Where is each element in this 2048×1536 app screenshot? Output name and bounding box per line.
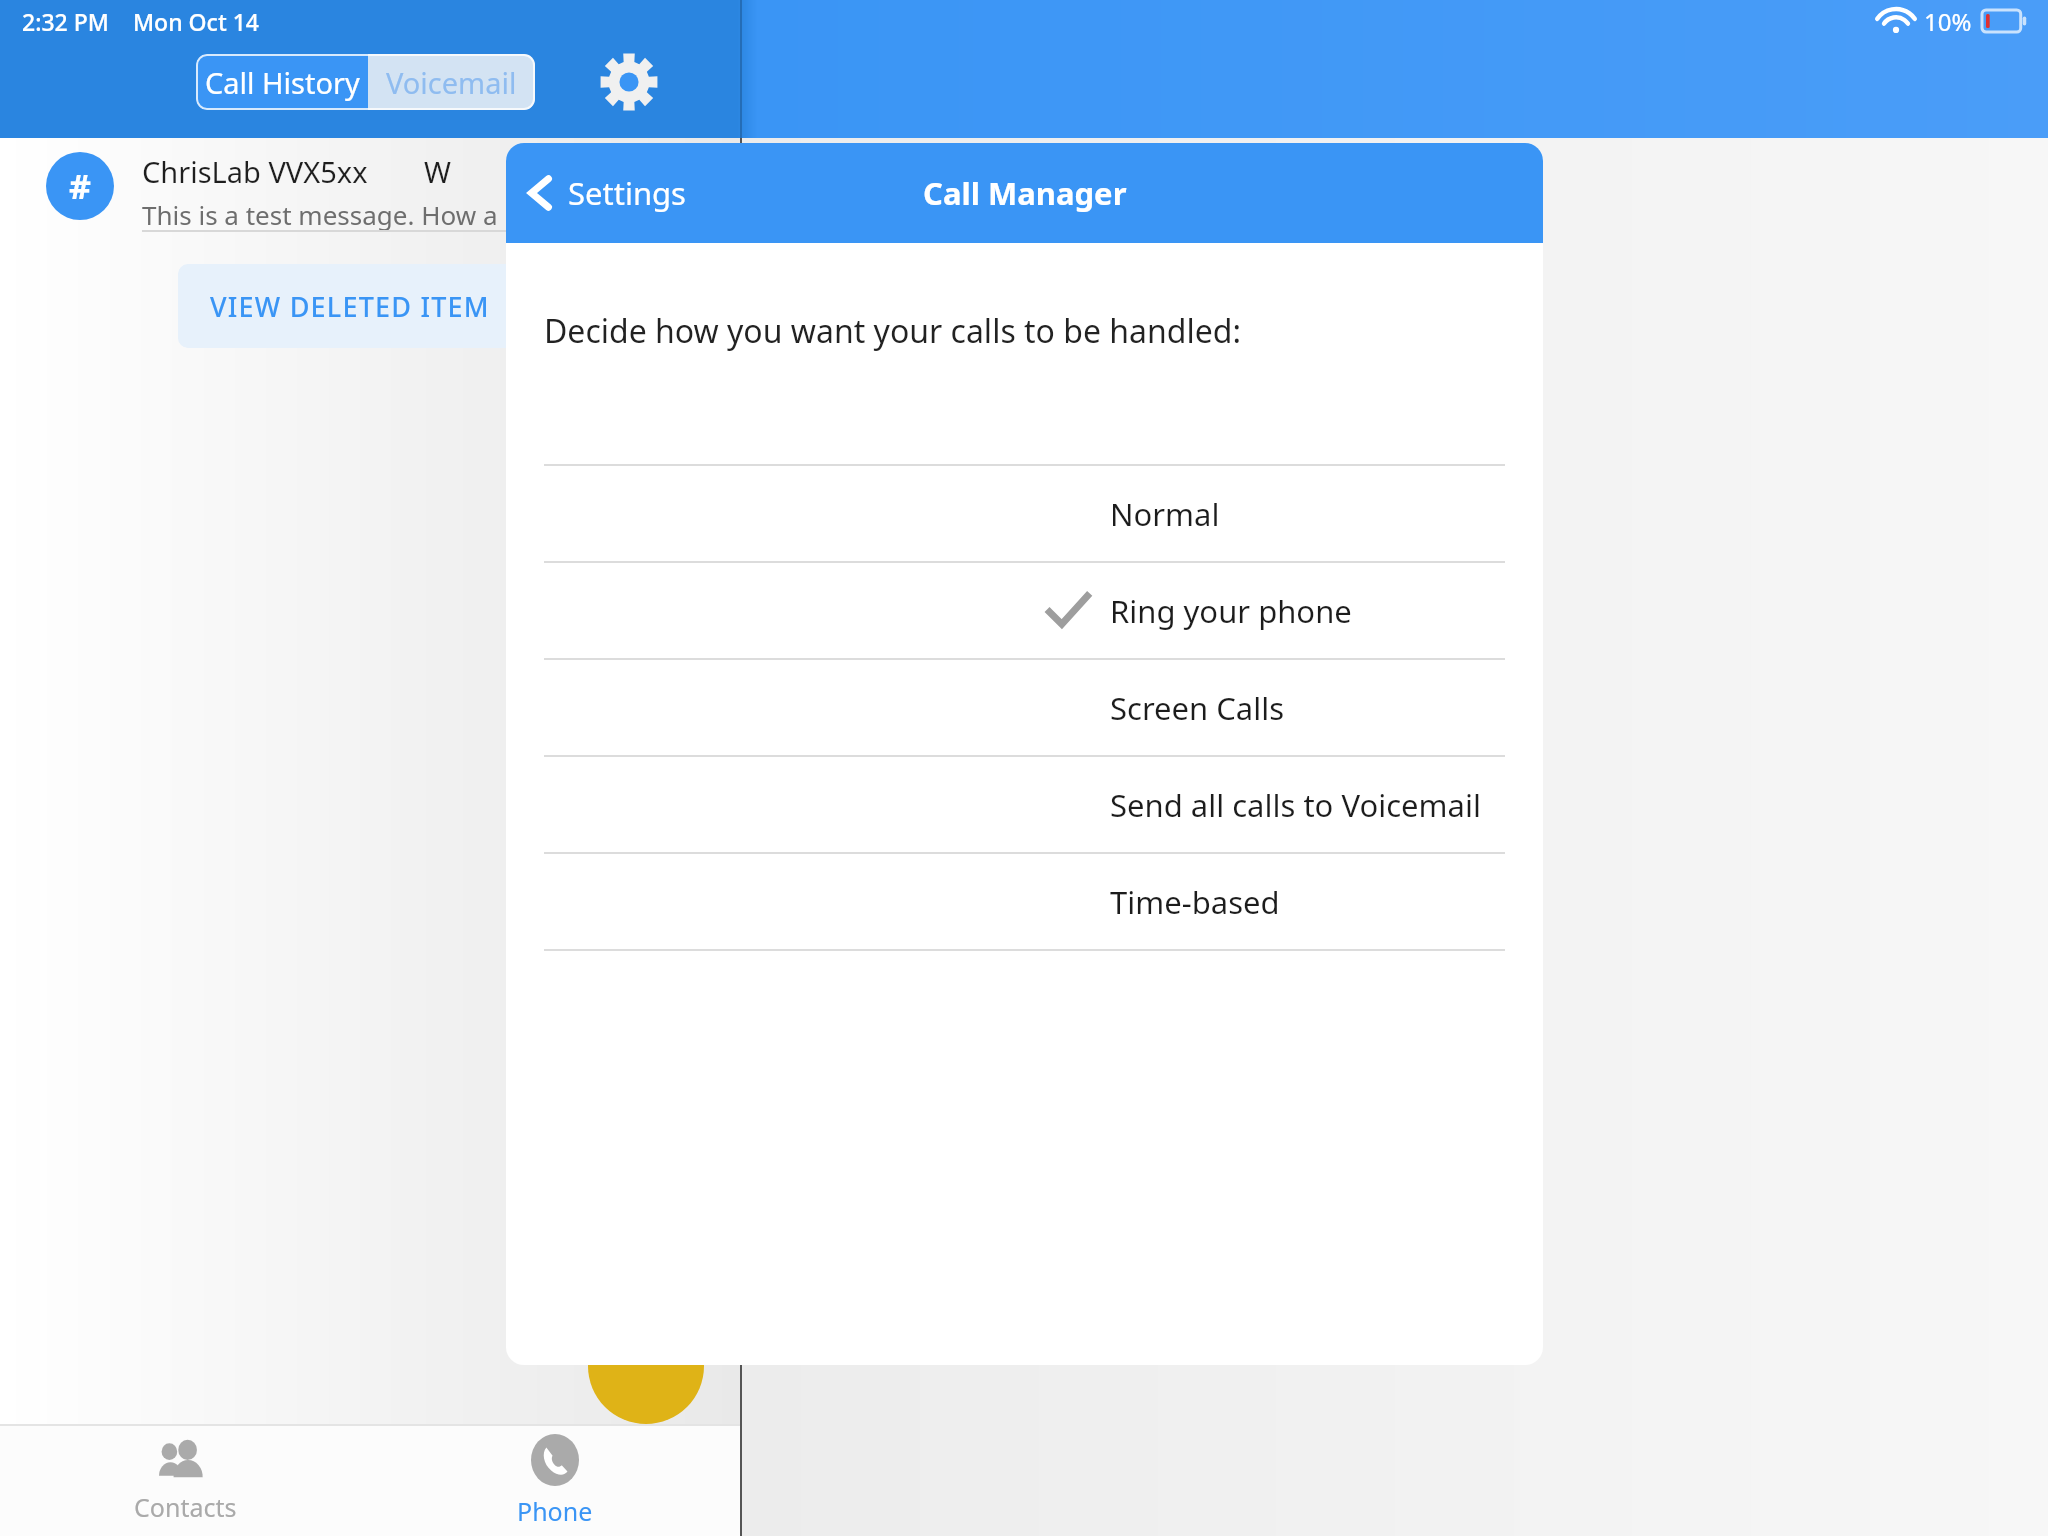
staticText: This is a test message. How a	[142, 197, 498, 230]
button[interactable]: VIEW DELETED ITEM	[178, 264, 738, 348]
staticText: #	[69, 163, 91, 209]
staticText: Call History	[205, 63, 360, 102]
staticText: Contacts	[134, 1490, 237, 1524]
button[interactable]: Ring your phone	[506, 563, 1543, 658]
staticText: Mon Oct 14	[133, 6, 259, 37]
staticText: W	[424, 152, 451, 191]
staticText: Screen Calls	[1110, 687, 1285, 729]
button[interactable]: Screen Calls	[506, 660, 1543, 755]
button[interactable]: Voicemail	[368, 54, 535, 110]
button[interactable]: Normal	[506, 466, 1543, 561]
staticText: Decide how you want your calls to be han…	[544, 309, 1242, 353]
staticText: Voicemail	[386, 63, 517, 102]
staticText: Ring your phone	[1110, 590, 1352, 632]
staticText: 2:32 PM	[22, 6, 109, 37]
staticText: ChrisLab VVX5xx	[142, 152, 368, 191]
button[interactable]: Send all calls to Voicemail	[506, 757, 1543, 852]
staticText: VIEW DELETED ITEM	[210, 288, 490, 325]
button[interactable]: Contacts	[0, 1426, 370, 1536]
staticText: Call Manager	[923, 172, 1127, 214]
staticText: Phone	[517, 1494, 593, 1528]
staticText: 10%	[1924, 5, 1972, 38]
staticText: Send all calls to Voicemail	[1110, 784, 1481, 826]
staticText: Normal	[1110, 493, 1220, 535]
button[interactable]: Compose	[588, 1308, 704, 1424]
button[interactable]: Time-based	[506, 854, 1543, 949]
staticText: Time-based	[1110, 881, 1280, 923]
button[interactable]: Phone	[370, 1426, 740, 1536]
staticText: Settings	[568, 172, 686, 214]
button[interactable]: Call History	[196, 54, 368, 110]
button[interactable]: Settings	[593, 46, 665, 118]
button[interactable]: Settings	[524, 143, 686, 243]
button[interactable]: #	[0, 138, 740, 230]
